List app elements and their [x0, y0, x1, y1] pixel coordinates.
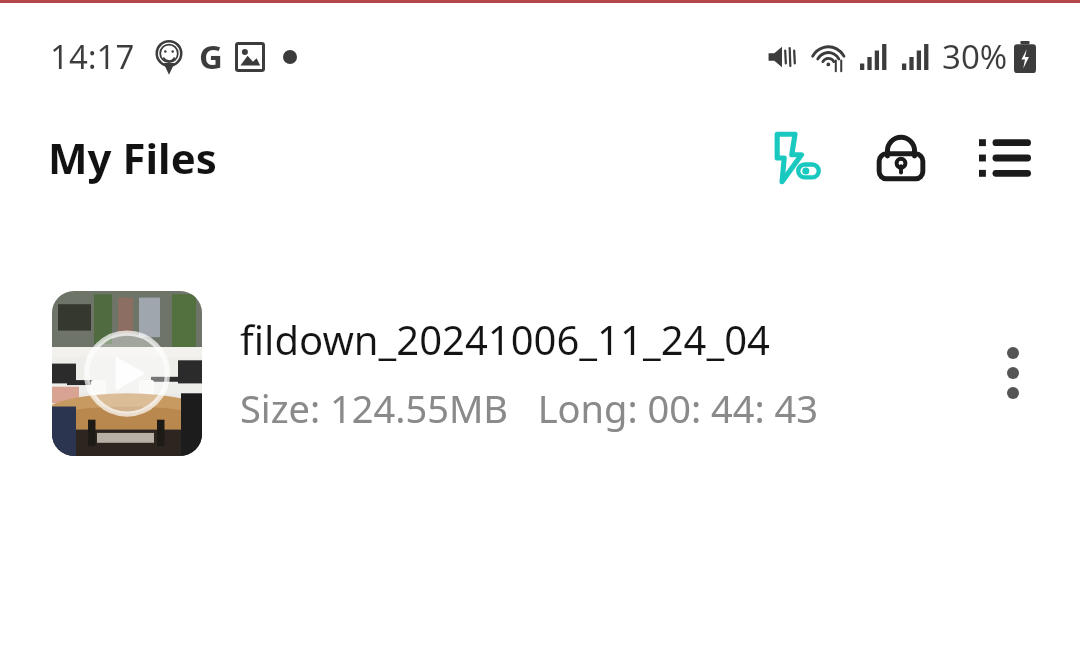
button[interactable]: More options [976, 336, 1050, 410]
button[interactable]: fildown_20241006_11_24_04 [0, 283, 1080, 463]
staticText: G [199, 34, 223, 79]
staticText: fildown_20241006_11_24_04 [240, 312, 770, 366]
staticText: My Files [48, 129, 217, 186]
staticText: 30% [942, 34, 1008, 79]
button[interactable]: Lock [864, 121, 938, 195]
staticText: Size: 124.55MB Long: 00: 44: 43 [240, 382, 819, 434]
button[interactable]: List view [968, 121, 1042, 195]
staticText: 14:17 [50, 34, 135, 79]
button[interactable]: Boost [758, 121, 832, 195]
